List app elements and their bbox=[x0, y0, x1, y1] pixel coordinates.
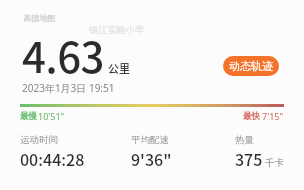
staticText: 平均配速 bbox=[131, 134, 169, 146]
staticText: 公里 bbox=[108, 60, 130, 76]
staticText: 锡江实验小学 bbox=[89, 24, 145, 36]
staticText: 4.63 bbox=[22, 24, 104, 85]
staticText: 7'15" bbox=[262, 110, 284, 122]
staticText: 千卡 bbox=[265, 157, 284, 169]
staticText: 最慢 bbox=[20, 111, 37, 122]
staticText: 运动时间 bbox=[20, 134, 58, 146]
staticText: 高德地图 bbox=[23, 13, 56, 23]
staticText: 00:44:28 bbox=[20, 147, 85, 170]
staticText: 2023年1月3日 19:51 bbox=[22, 81, 115, 95]
staticText: 9'36" bbox=[131, 147, 172, 170]
staticText: 热量 bbox=[235, 134, 254, 146]
button[interactable]: 动态轨迹 bbox=[223, 56, 279, 76]
staticText: 最快 bbox=[243, 111, 260, 122]
staticText: 375 bbox=[235, 147, 263, 170]
staticText: 10'51" bbox=[38, 110, 65, 122]
staticText: 动态轨迹 bbox=[229, 59, 273, 73]
